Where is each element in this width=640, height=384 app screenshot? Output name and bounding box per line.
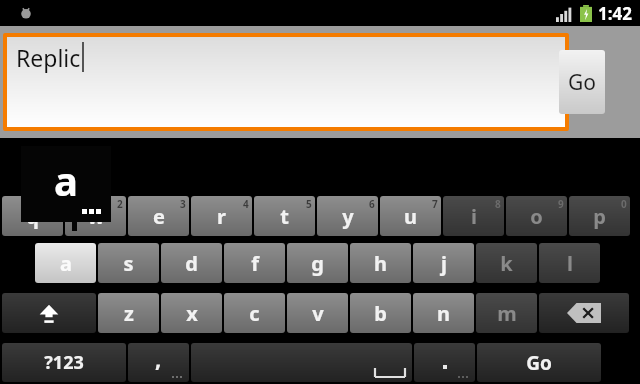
button[interactable]: x (161, 293, 222, 333)
staticText: ?123 (44, 350, 84, 375)
staticText: 4 (243, 197, 249, 211)
staticText: p (593, 203, 606, 230)
staticText: d (185, 250, 198, 277)
staticText: q (26, 203, 39, 230)
button[interactable]: n (413, 293, 474, 333)
button[interactable]: j (413, 243, 474, 283)
staticText: Go (568, 68, 596, 97)
staticText: l (567, 250, 573, 277)
button[interactable]: Backspace (539, 293, 629, 333)
button[interactable]: d (161, 243, 222, 283)
button[interactable]: Comma (128, 343, 189, 382)
button[interactable]: i (443, 196, 504, 236)
button[interactable]: b (350, 293, 411, 333)
staticText: 8 (495, 197, 501, 211)
staticText: f (251, 250, 259, 277)
button[interactable]: q (2, 196, 63, 236)
button[interactable]: z (98, 293, 159, 333)
button[interactable]: r (191, 196, 252, 236)
staticText: Replic (16, 42, 81, 73)
staticText: j (441, 250, 447, 277)
staticText: u (404, 203, 417, 230)
staticText: a (54, 153, 78, 207)
staticText: m (497, 300, 517, 327)
button[interactable]: Go (559, 50, 605, 114)
staticText: 7 (432, 197, 438, 211)
button[interactable]: Period (414, 343, 475, 382)
button[interactable]: w (65, 196, 126, 236)
button[interactable]: Space (191, 343, 412, 382)
button[interactable]: u (380, 196, 441, 236)
button[interactable]: m (476, 293, 537, 333)
button[interactable]: k (476, 243, 537, 283)
button[interactable]: o (506, 196, 567, 236)
button[interactable]: g (287, 243, 348, 283)
staticText: g (311, 250, 324, 277)
button[interactable]: ?123 (2, 343, 126, 382)
button[interactable]: Shift (2, 293, 96, 333)
button[interactable]: f (224, 243, 285, 283)
staticText: r (217, 203, 226, 230)
button[interactable]: e (128, 196, 189, 236)
staticText: x (186, 300, 198, 327)
staticText: 1:42 (598, 2, 632, 25)
staticText: t (280, 203, 289, 230)
staticText: w (87, 203, 105, 230)
button[interactable]: s (98, 243, 159, 283)
button[interactable]: v (287, 293, 348, 333)
button[interactable]: Go (477, 343, 601, 382)
staticText: s (123, 250, 134, 277)
staticText: 0 (621, 197, 627, 211)
staticText: Go (526, 350, 552, 376)
button[interactable]: t (254, 196, 315, 236)
staticText: 5 (306, 197, 312, 211)
staticText: a (60, 250, 72, 277)
staticText: c (249, 300, 260, 327)
button[interactable]: p (569, 196, 630, 236)
staticText: o (530, 203, 543, 230)
button[interactable]: a (35, 243, 96, 283)
button[interactable]: l (539, 243, 600, 283)
staticText: b (374, 300, 387, 327)
staticText: 9 (558, 197, 564, 211)
staticText: h (374, 250, 387, 277)
staticText: 2 (117, 197, 123, 211)
button[interactable]: Replic (7, 37, 565, 127)
staticText: e (153, 203, 165, 230)
staticText: , (155, 343, 162, 373)
staticText: z (124, 300, 134, 327)
button[interactable]: h (350, 243, 411, 283)
staticText: y (342, 203, 354, 230)
staticText: i (471, 203, 477, 230)
staticText: 6 (369, 197, 375, 211)
staticText: n (437, 300, 450, 327)
staticText: 3 (180, 197, 186, 211)
button[interactable]: c (224, 293, 285, 333)
button[interactable]: y (317, 196, 378, 236)
staticText: v (312, 300, 324, 327)
staticText: k (500, 250, 513, 277)
